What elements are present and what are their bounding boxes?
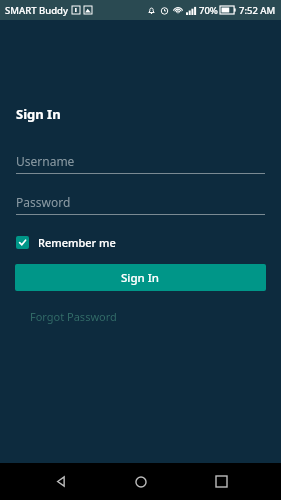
staticText: Remember me	[38, 235, 116, 250]
button[interactable]: Forgot Password	[16, 305, 131, 328]
button[interactable]: Home	[121, 463, 161, 500]
staticText: 70%	[199, 4, 218, 17]
staticText: Sign In	[121, 270, 160, 286]
staticText: 7:52 AM	[239, 4, 276, 17]
staticText: SMART Buddy	[5, 4, 68, 17]
button[interactable]: Recent apps	[201, 463, 241, 500]
staticText: Forgot Password	[30, 309, 117, 324]
button[interactable]: Sign In	[15, 264, 266, 291]
button[interactable]: Username	[16, 153, 265, 174]
button[interactable]: Remember me	[16, 233, 122, 252]
staticText: Username	[16, 153, 75, 169]
button[interactable]: Back	[40, 463, 80, 500]
staticText: Password	[16, 194, 71, 210]
staticText: Sign In	[16, 105, 61, 123]
button[interactable]: Password	[16, 194, 265, 215]
